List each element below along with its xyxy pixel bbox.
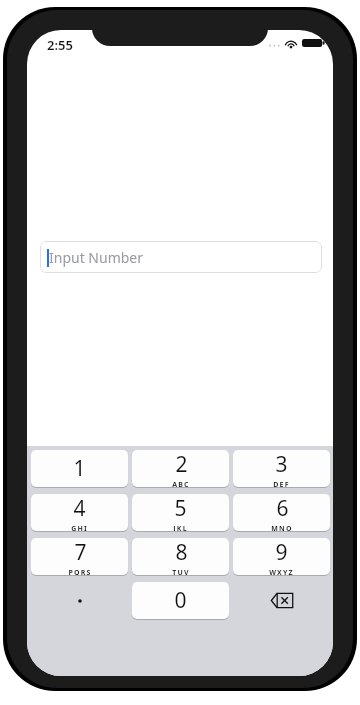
button[interactable]: 9	[233, 538, 330, 575]
staticText: MNO	[271, 524, 293, 531]
staticText: Input Number	[49, 248, 144, 267]
button[interactable]: 1	[31, 450, 128, 487]
staticText: ABC	[172, 480, 190, 487]
staticText: JKL	[173, 524, 188, 531]
button[interactable]: Delete	[233, 582, 330, 619]
staticText: PQRS	[68, 568, 92, 575]
button[interactable]: 2	[132, 450, 229, 487]
staticText: 3	[275, 450, 288, 479]
staticText: TUV	[172, 568, 190, 575]
button[interactable]: Input Number	[40, 241, 322, 273]
staticText: 2:55	[47, 36, 73, 54]
staticText: WXYZ	[269, 568, 294, 575]
staticText: 0	[174, 586, 187, 615]
button[interactable]: 5	[132, 494, 229, 531]
button[interactable]: 8	[132, 538, 229, 575]
staticText: 5	[174, 494, 187, 523]
staticText: 6	[276, 494, 289, 523]
button[interactable]: 4	[31, 494, 128, 531]
staticText: 1	[73, 454, 86, 483]
staticText: DEF	[273, 480, 290, 487]
button[interactable]	[31, 582, 128, 619]
staticText: 4	[73, 494, 86, 523]
button[interactable]: 0	[132, 582, 229, 619]
staticText: 2	[175, 450, 188, 479]
button[interactable]: 7	[31, 538, 128, 575]
staticText: 7	[74, 538, 87, 567]
staticText: 9	[275, 538, 288, 567]
staticText: GHI	[71, 524, 88, 531]
staticText: 8	[175, 538, 188, 567]
button[interactable]: 6	[233, 494, 330, 531]
button[interactable]: 3	[233, 450, 330, 487]
